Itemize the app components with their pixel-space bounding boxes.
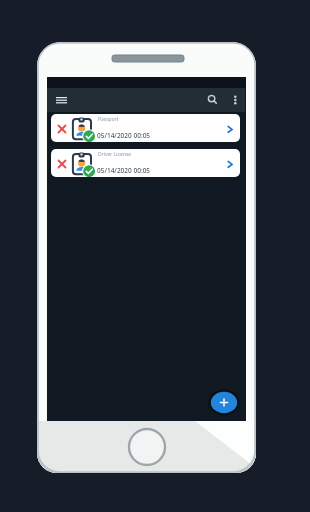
button[interactable]: Driver License — [51, 149, 240, 177]
staticText: 05/14/2020 00:05 — [97, 166, 151, 175]
staticText: Driver License — [98, 151, 132, 158]
button[interactable] — [51, 92, 71, 108]
button[interactable] — [203, 90, 221, 108]
staticText: 05/14/2020 00:05 — [97, 131, 151, 140]
button[interactable] — [208, 389, 240, 416]
staticText: Passport — [98, 116, 119, 123]
button[interactable]: Passport — [51, 114, 240, 142]
button[interactable] — [229, 90, 243, 108]
button[interactable] — [128, 428, 166, 466]
